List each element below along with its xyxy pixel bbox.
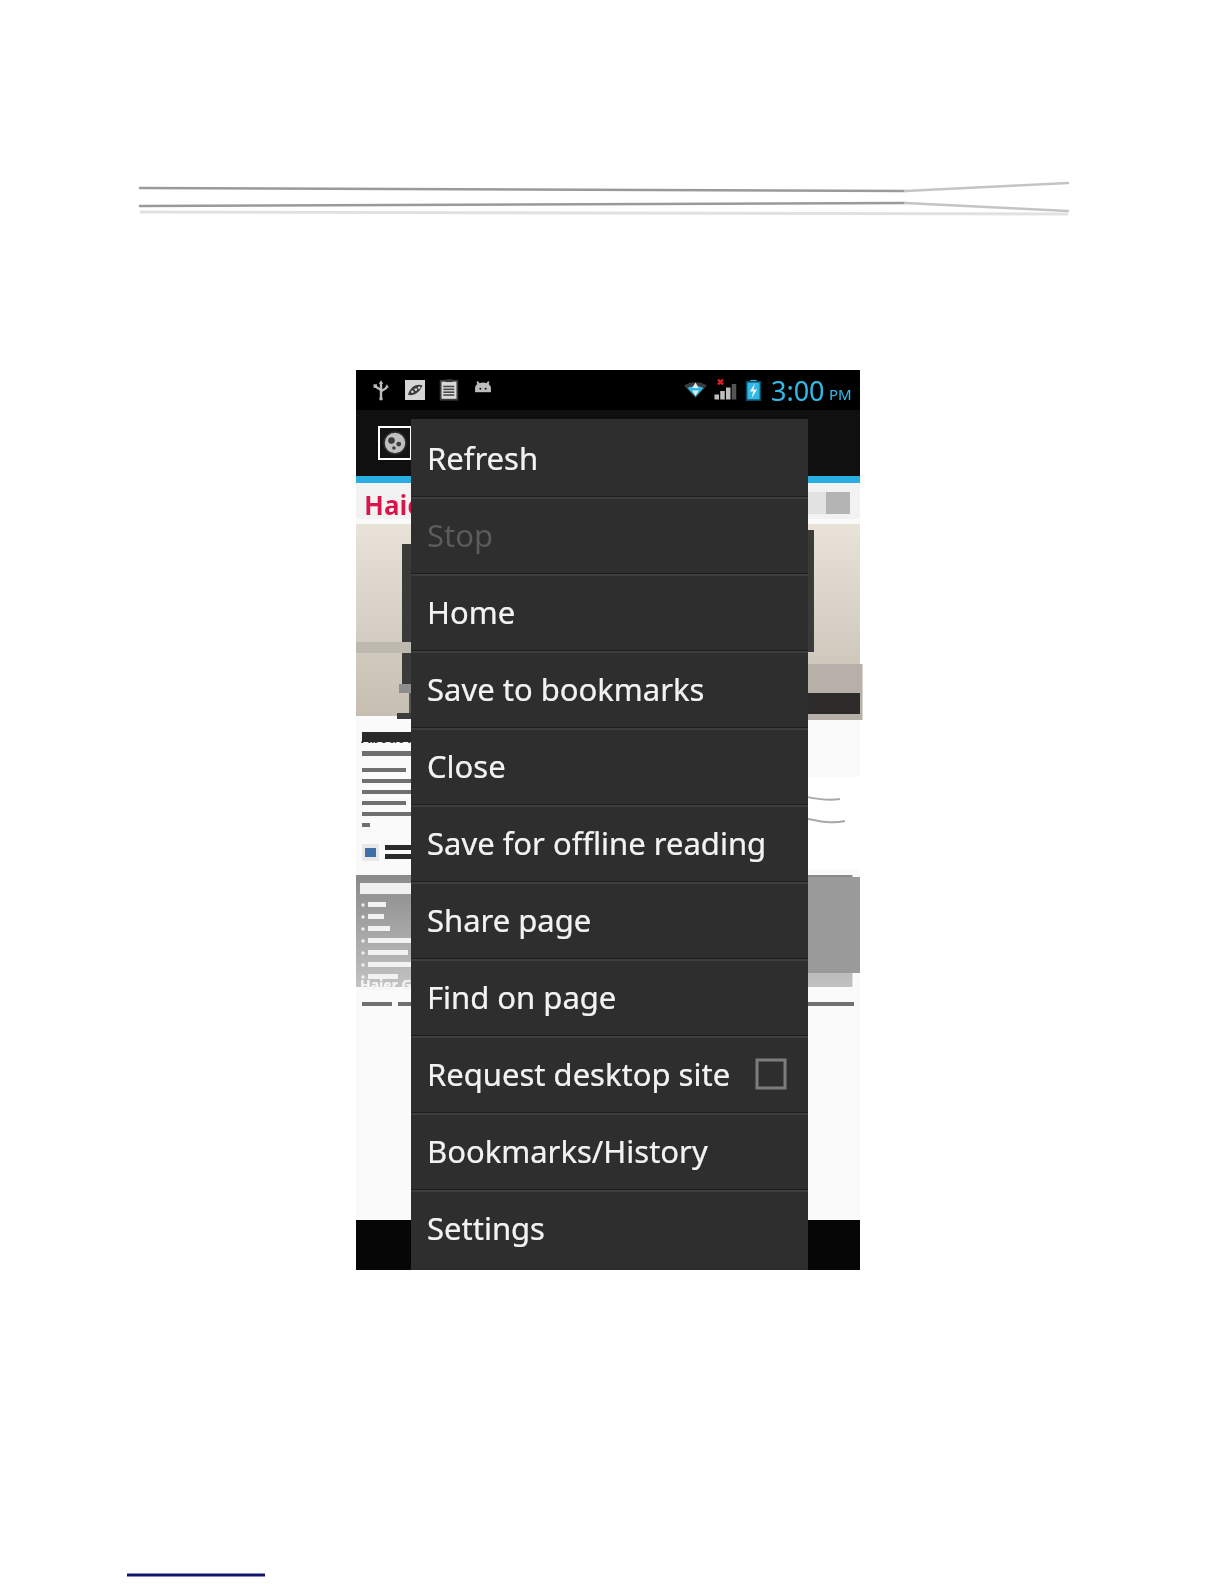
staticText: Settings <box>427 1207 545 1249</box>
staticText: About Haier <box>361 728 445 747</box>
staticText: Close <box>427 745 506 787</box>
staticText: Save for offline reading <box>427 822 767 864</box>
staticText: Request desktop site <box>427 1053 731 1095</box>
staticText: Refresh <box>427 437 539 479</box>
button: Stop <box>411 496 808 573</box>
staticText: PM <box>829 384 852 404</box>
button[interactable]: Save to bookmarks <box>411 650 808 727</box>
button[interactable]: Settings <box>411 1189 808 1266</box>
staticText: Share page <box>427 899 592 941</box>
button[interactable]: Find on page <box>411 958 808 1035</box>
button[interactable]: Request desktop site <box>411 1035 808 1112</box>
button[interactable]: Refresh <box>411 419 808 496</box>
staticText: Haier Global <box>360 975 447 994</box>
staticText: Find on page <box>427 976 617 1018</box>
staticText: Haier <box>364 487 435 522</box>
button[interactable]: Share page <box>411 881 808 958</box>
button[interactable]: Page info <box>380 428 410 458</box>
staticText: Save to bookmarks <box>427 668 705 710</box>
staticText: Home <box>427 591 516 633</box>
button[interactable]: Bookmarks/History <box>411 1112 808 1189</box>
staticText: Bookmarks/History <box>427 1130 708 1172</box>
button[interactable]: Save for offline reading <box>411 804 808 881</box>
button[interactable]: Close <box>411 727 808 804</box>
staticText: Stop <box>427 514 494 556</box>
staticText: 3:00 <box>771 372 825 409</box>
button[interactable]: Home <box>411 573 808 650</box>
